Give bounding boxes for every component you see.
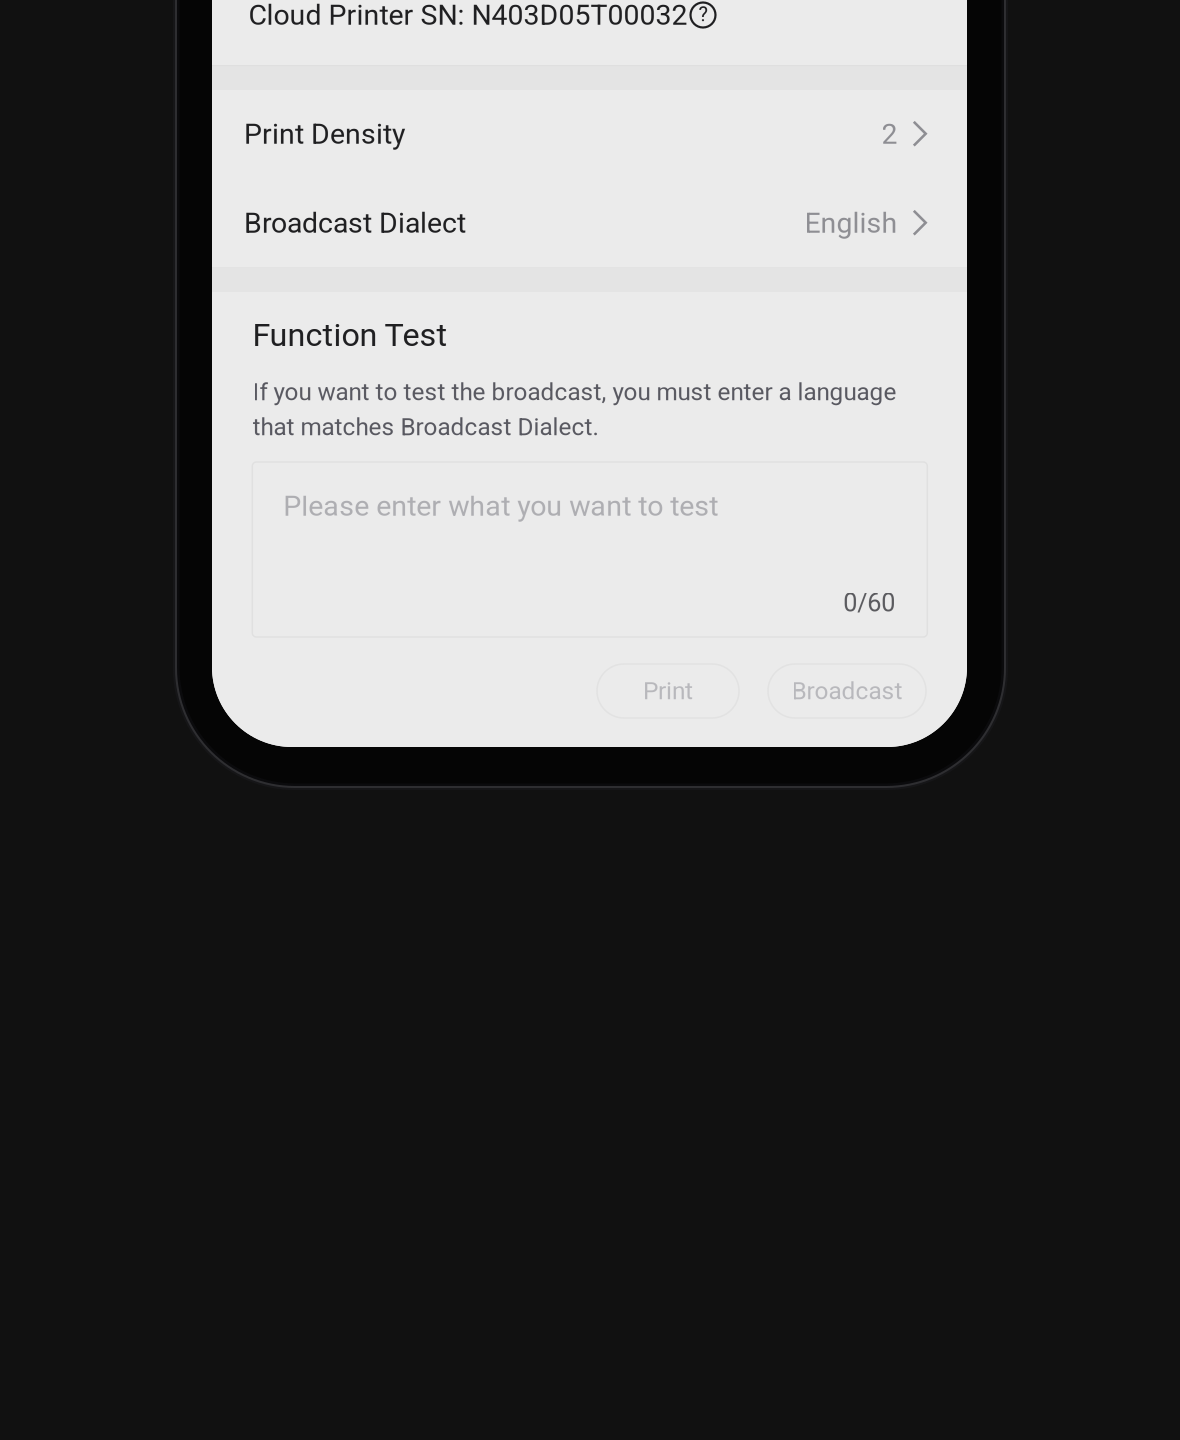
staticText: 0/60 (843, 588, 895, 618)
button[interactable]: Broadcast Dialect (212, 180, 967, 267)
staticText: Please enter what you want to test (283, 489, 718, 523)
button[interactable]: Please enter what you want to test (252, 462, 927, 637)
button[interactable]: Print Density (212, 91, 967, 178)
staticText: Print (643, 677, 693, 705)
staticText: 2 (881, 117, 897, 151)
staticText: Function Test (252, 316, 447, 354)
button[interactable]: Broadcast (768, 664, 926, 718)
staticText: Print Density (244, 117, 405, 151)
staticText: Cloud Printer SN: N403D05T00032 (248, 0, 687, 32)
staticText: English (804, 206, 897, 240)
staticText: ? (698, 3, 707, 26)
button[interactable]: About the cloud printer serial number (689, 1, 716, 28)
button[interactable]: Print (597, 664, 739, 718)
staticText: If you want to test the broadcast, you m… (252, 378, 896, 406)
staticText: Broadcast (791, 677, 902, 705)
staticText: that matches Broadcast Dialect. (252, 413, 598, 441)
staticText: Broadcast Dialect (244, 206, 466, 240)
